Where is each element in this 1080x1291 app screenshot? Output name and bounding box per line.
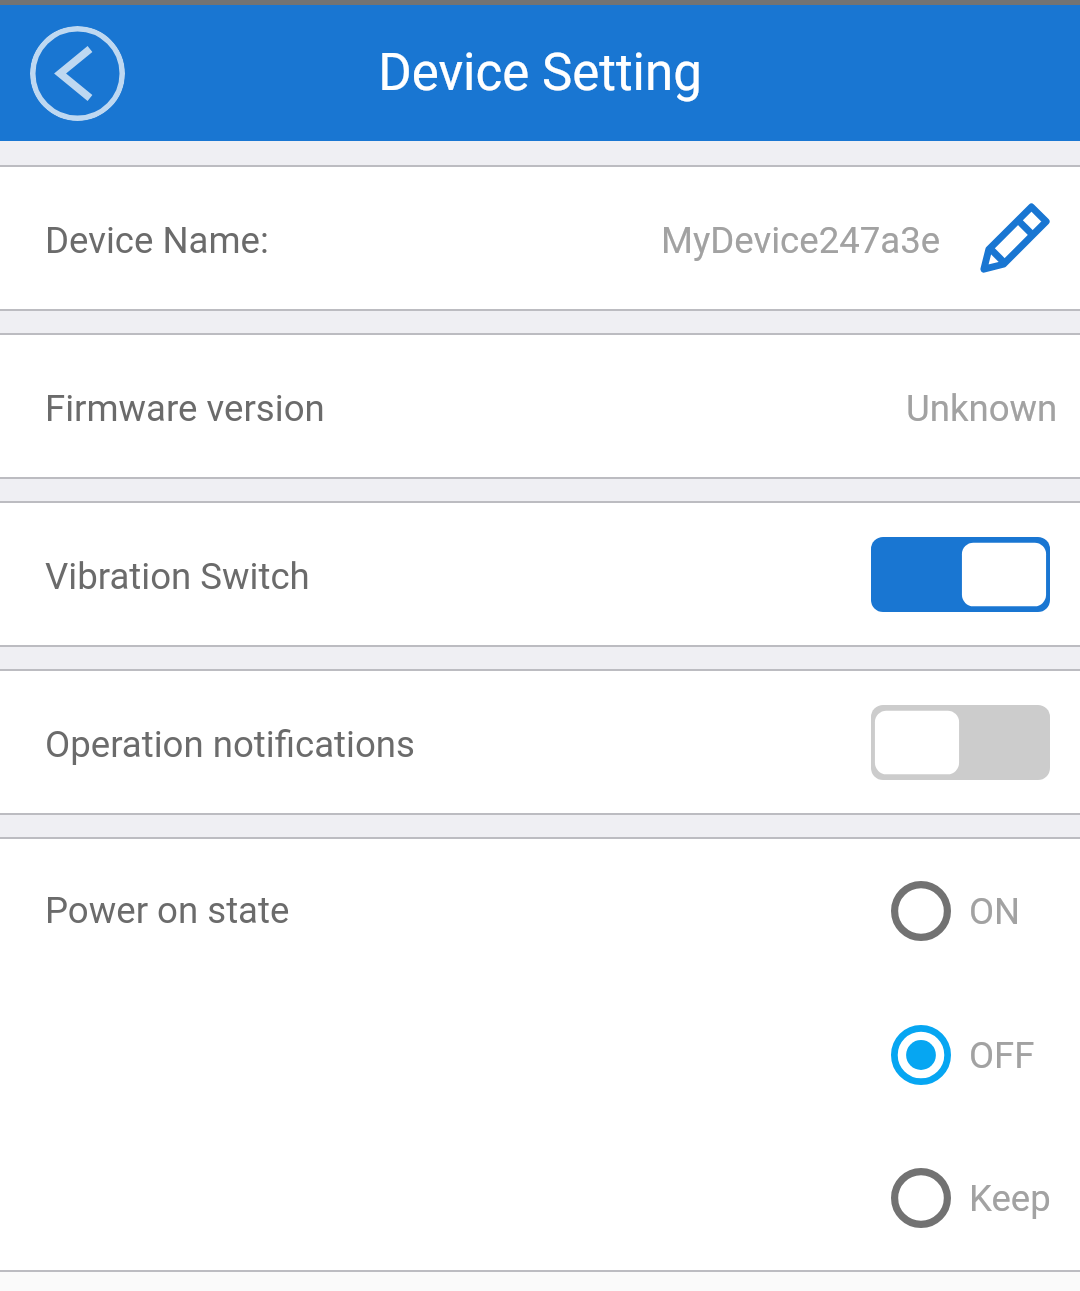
button[interactable]: Switch off — [871, 705, 1050, 780]
staticText: Power on state — [45, 889, 290, 932]
button[interactable]: Vibration Switch — [0, 503, 1080, 645]
button[interactable]: ON — [891, 881, 1021, 941]
button[interactable]: Firmware version — [0, 335, 1080, 477]
button[interactable]: OFF — [891, 1025, 1035, 1085]
button[interactable]: Edit device name — [980, 203, 1050, 273]
staticText: Operation notifications — [45, 723, 415, 766]
staticText: Device Name: — [45, 219, 269, 262]
staticText: Unknown — [906, 387, 1058, 430]
button[interactable]: Switch on — [871, 537, 1050, 612]
staticText: Keep — [969, 1177, 1051, 1220]
staticText: MyDevice247a3e — [661, 219, 941, 262]
staticText: Firmware version — [45, 387, 325, 430]
button[interactable]: Back — [30, 26, 125, 121]
button[interactable]: Device Name: — [0, 167, 1080, 309]
staticText: Vibration Switch — [45, 555, 310, 598]
staticText: ON — [969, 890, 1021, 933]
staticText: Device Setting — [0, 43, 1080, 103]
staticText: OFF — [969, 1034, 1035, 1077]
button[interactable]: Keep — [891, 1168, 1051, 1228]
button[interactable]: Operation notifications — [0, 671, 1080, 813]
